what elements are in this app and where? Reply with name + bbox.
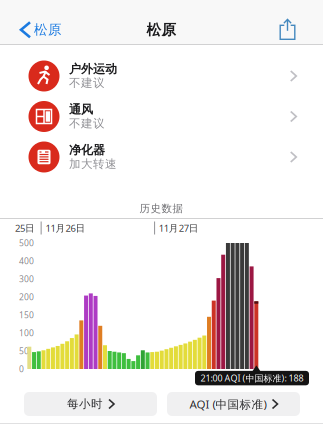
staticText: 100 xyxy=(19,327,34,339)
staticText: 11月27日 xyxy=(159,221,199,234)
staticText: 200 xyxy=(19,291,34,303)
button[interactable]: 户外运动 xyxy=(0,56,323,96)
staticText: AQI (中国标准) xyxy=(189,396,266,412)
staticText: 500 xyxy=(19,237,34,249)
button[interactable]: Share xyxy=(275,15,299,44)
staticText: 通风 xyxy=(69,102,93,117)
staticText: 11月26日 xyxy=(45,221,85,234)
staticText: 150 xyxy=(19,309,34,321)
button[interactable]: AQI (中国标准) xyxy=(167,392,300,416)
staticText: 每小时 xyxy=(67,397,103,411)
staticText: 0 xyxy=(19,363,24,375)
button[interactable]: 每小时 xyxy=(24,392,157,416)
staticText: 净化器 xyxy=(69,142,105,157)
staticText: 松原 xyxy=(146,21,176,39)
staticText: 400 xyxy=(19,255,34,267)
staticText: 不建议 xyxy=(69,76,105,90)
staticText: 历史数据 xyxy=(139,202,183,215)
staticText: 户外运动 xyxy=(69,61,117,76)
staticText: 加大转速 xyxy=(69,157,117,171)
staticText: 21:00 AQI (中国标准): 188 xyxy=(200,372,303,384)
button[interactable]: 松原 xyxy=(21,14,83,46)
staticText: 松原 xyxy=(34,21,62,38)
button[interactable]: 通风 xyxy=(0,96,323,137)
staticText: 50 xyxy=(19,345,29,357)
button[interactable]: 净化器 xyxy=(0,137,323,177)
staticText: 不建议 xyxy=(69,116,105,131)
staticText: 300 xyxy=(19,273,34,285)
staticText: 25日 xyxy=(15,221,35,234)
